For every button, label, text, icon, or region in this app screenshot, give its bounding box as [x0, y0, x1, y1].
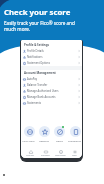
- staticText: AutoPay: [27, 77, 38, 81]
- staticText: Rewards: [39, 139, 49, 142]
- button[interactable]: Manage Bank Accounts: [21, 94, 82, 100]
- staticText: Balance Transfer: [27, 83, 48, 87]
- staticText: FICO Score: [22, 139, 35, 142]
- staticText: Notifications: [27, 55, 43, 59]
- staticText: Offers: [56, 139, 63, 142]
- button[interactable]: Notifications: [21, 54, 82, 60]
- button[interactable]: Balance Transfer: [21, 82, 82, 88]
- staticText: Accounts: [26, 154, 35, 157]
- staticText: Easily track your Fico® score and much m…: [4, 20, 75, 32]
- button[interactable]: Statements: [68, 125, 81, 142]
- button[interactable]: More: [72, 150, 77, 157]
- staticText: Payments: [41, 154, 50, 157]
- button[interactable]: FICO Score: [22, 125, 35, 142]
- button[interactable]: Payments: [41, 150, 50, 157]
- staticText: Statements: [68, 139, 81, 142]
- button[interactable]: Rewards: [38, 125, 50, 142]
- button[interactable]: Information: [55, 150, 66, 157]
- staticText: Information: [55, 154, 66, 157]
- button[interactable]: Accounts: [26, 150, 35, 157]
- button[interactable]: Statements: [21, 100, 82, 106]
- staticText: Manage Bank Accounts: [27, 95, 56, 99]
- staticText: Check your score: [4, 7, 71, 18]
- button[interactable]: Offers: [53, 125, 65, 142]
- button[interactable]: Statement Options: [21, 60, 82, 66]
- staticText: More: [72, 154, 77, 157]
- staticText: Account Management: [24, 71, 56, 75]
- button[interactable]: Profile Details: [21, 48, 82, 54]
- staticText: Statement Options: [27, 61, 50, 65]
- button[interactable]: AutoPay: [21, 76, 82, 82]
- button[interactable]: Manage Authorized Users: [21, 88, 82, 94]
- staticText: Manage Authorized Users: [27, 89, 59, 93]
- staticText: Statements: [27, 101, 41, 105]
- staticText: Profile Details: [27, 49, 44, 53]
- staticText: Profile & Settings: [24, 43, 49, 47]
